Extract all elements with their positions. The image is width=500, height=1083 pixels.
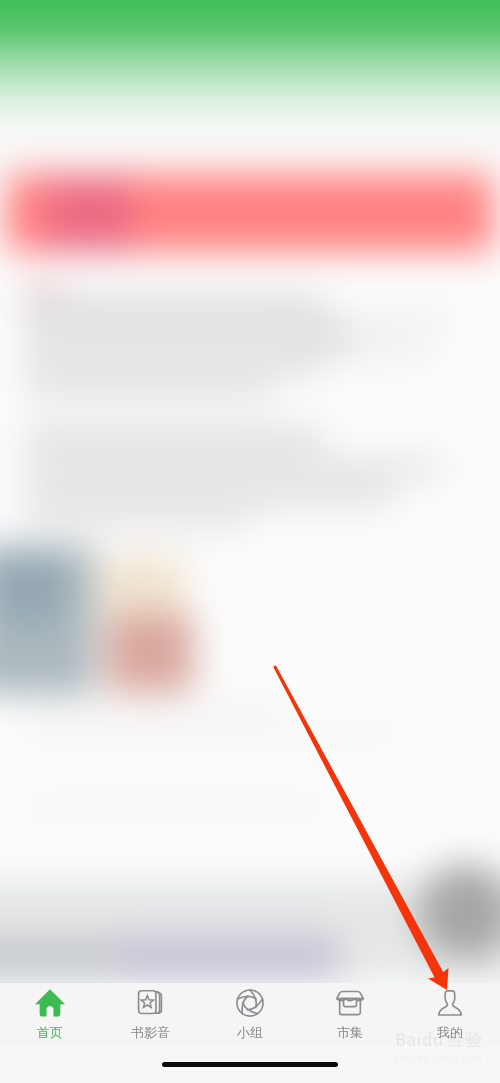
staticText: Baidu 经验 [395,1028,482,1051]
button[interactable]: 市集 [300,983,400,1045]
button[interactable]: 书影音 [100,983,200,1045]
staticText: 首页 [37,1024,63,1040]
other: Annotation arrow [0,0,500,1083]
staticText: 市集 [337,1024,363,1040]
staticText: 书影音 [131,1024,170,1040]
staticText: 小组 [237,1024,263,1040]
button[interactable]: 小组 [200,983,300,1045]
button[interactable]: 我的 [400,983,500,1045]
staticText: 我的 [437,1024,463,1040]
button[interactable]: 首页 [0,983,100,1045]
